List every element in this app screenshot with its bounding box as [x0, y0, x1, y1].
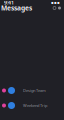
staticText: Weekend Trip [23, 103, 47, 108]
button[interactable]: Weekend Trip [0, 98, 64, 113]
staticText: ▪▪▪ [51, 0, 60, 5]
staticText: Design Team [23, 88, 46, 93]
button[interactable]: Design Team [0, 83, 64, 98]
staticText: 9:41 [4, 0, 14, 6]
staticText: Messages [1, 4, 32, 12]
button[interactable]: Compose [58, 6, 61, 9]
button[interactable]: Search [53, 6, 56, 9]
